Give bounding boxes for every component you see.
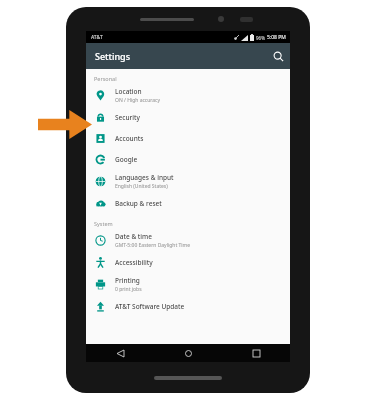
staticText: 96% (256, 35, 265, 41)
staticText: System (94, 220, 113, 227)
staticText: 0 print jobs (115, 286, 142, 293)
button[interactable]: Home (154, 344, 222, 362)
staticText: Printing (115, 276, 140, 285)
staticText: ON / High accuracy (115, 97, 161, 104)
button[interactable]: AT&T Software Update (86, 296, 290, 317)
button[interactable]: Backup & reset (86, 193, 290, 214)
button[interactable]: Security (86, 107, 290, 128)
staticText: Date & time (115, 232, 152, 241)
button[interactable]: Printing (86, 273, 290, 296)
staticText: Languages & input (115, 173, 174, 182)
other: Pointer to Security (38, 110, 92, 139)
staticText: Google (115, 155, 138, 164)
staticText: Location (115, 87, 142, 96)
staticText: Settings (95, 50, 131, 62)
button[interactable]: Recents (222, 344, 290, 362)
staticText: AT&T (91, 34, 103, 41)
staticText: Accounts (115, 134, 144, 143)
staticText: Backup & reset (115, 199, 162, 208)
staticText: Security (115, 113, 140, 122)
staticText: 5:08 PM (267, 34, 286, 41)
staticText: English (United States) (115, 183, 168, 190)
staticText: AT&T Software Update (115, 302, 185, 311)
staticText: Personal (94, 75, 117, 82)
button[interactable]: Languages & input (86, 170, 290, 193)
button[interactable]: Location (86, 84, 290, 107)
staticText: GMT-5:00 Eastern Daylight Time (115, 242, 191, 249)
staticText: Accessibility (115, 258, 153, 267)
button[interactable]: Date & time (86, 229, 290, 252)
button[interactable]: Back (86, 344, 154, 362)
button[interactable]: Google (86, 149, 290, 170)
button[interactable]: Accounts (86, 128, 290, 149)
button[interactable]: Accessibility (86, 252, 290, 273)
button[interactable]: Search (266, 44, 290, 68)
